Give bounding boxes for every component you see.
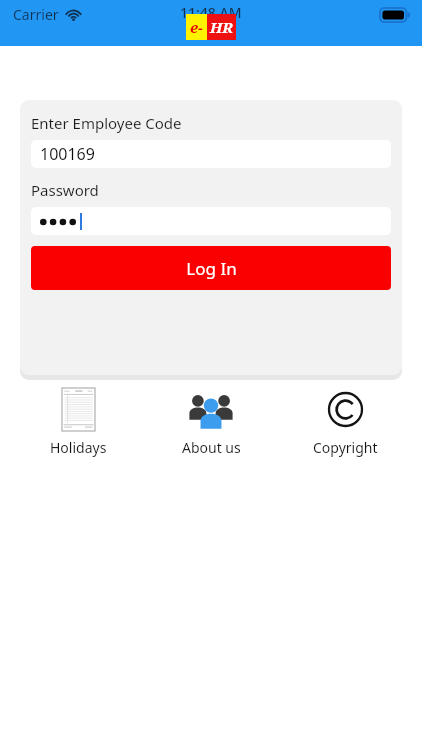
staticText: HR — [210, 17, 233, 37]
staticText: Holidays — [50, 438, 107, 457]
button[interactable]: Copyright — [289, 386, 401, 457]
button[interactable]: 100169 — [31, 140, 391, 168]
other: Copyright — [327, 391, 364, 428]
button[interactable]: About us — [155, 386, 267, 457]
button[interactable] — [31, 207, 391, 235]
staticText: Password — [31, 180, 99, 200]
button[interactable]: Holidays — [22, 386, 134, 457]
staticText: About us — [182, 438, 241, 457]
staticText: 100169 — [40, 143, 95, 165]
other: Holidays — [62, 388, 95, 431]
other: About us — [188, 390, 234, 429]
staticText: Enter Employee Code — [31, 113, 182, 133]
staticText: e- — [190, 17, 203, 37]
staticText: Copyright — [313, 438, 378, 457]
staticText: Carrier — [13, 5, 59, 24]
staticText: 11:48 AM — [180, 3, 242, 22]
button[interactable]: Log In — [31, 246, 391, 290]
staticText: Log In — [186, 257, 237, 280]
